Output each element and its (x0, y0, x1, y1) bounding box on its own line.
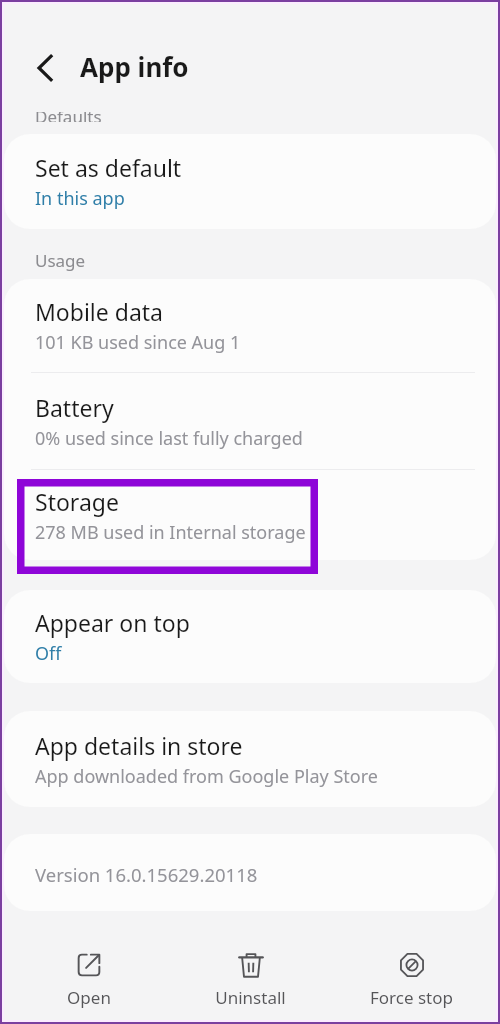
staticText: Uninstall (215, 986, 286, 1009)
button[interactable]: Set as default (4, 134, 496, 229)
staticText: Storage (35, 486, 119, 517)
staticText: Version 16.0.15629.20118 (35, 862, 258, 887)
staticText: Set as default (35, 152, 182, 183)
staticText: Mobile data (35, 296, 163, 327)
button[interactable]: Back (25, 47, 67, 89)
button[interactable]: Open (8, 944, 170, 1019)
button[interactable]: Mobile data (4, 279, 496, 372)
staticText: Appear on top (35, 607, 190, 638)
staticText: Open (67, 986, 111, 1009)
staticText: Defaults (35, 112, 102, 122)
staticText: 0% used since last fully charged (35, 426, 303, 451)
staticText: App details in store (35, 730, 243, 761)
staticText: App info (80, 49, 189, 84)
button[interactable]: Force stop (331, 944, 492, 1019)
staticText: Force stop (370, 986, 453, 1009)
button[interactable]: Uninstall (170, 944, 331, 1019)
staticText: Off (35, 641, 62, 666)
staticText: 101 KB used since Aug 1 (35, 330, 241, 355)
button[interactable]: App details in store (4, 711, 496, 807)
staticText: App downloaded from Google Play Store (35, 764, 378, 789)
button[interactable]: Storage (4, 470, 496, 560)
staticText: Usage (35, 249, 86, 272)
staticText: Battery (35, 392, 114, 423)
staticText: 278 MB used in Internal storage (35, 520, 306, 545)
staticText: In this app (35, 186, 125, 211)
button[interactable]: Appear on top (4, 590, 496, 683)
button[interactable]: Battery (4, 373, 496, 469)
